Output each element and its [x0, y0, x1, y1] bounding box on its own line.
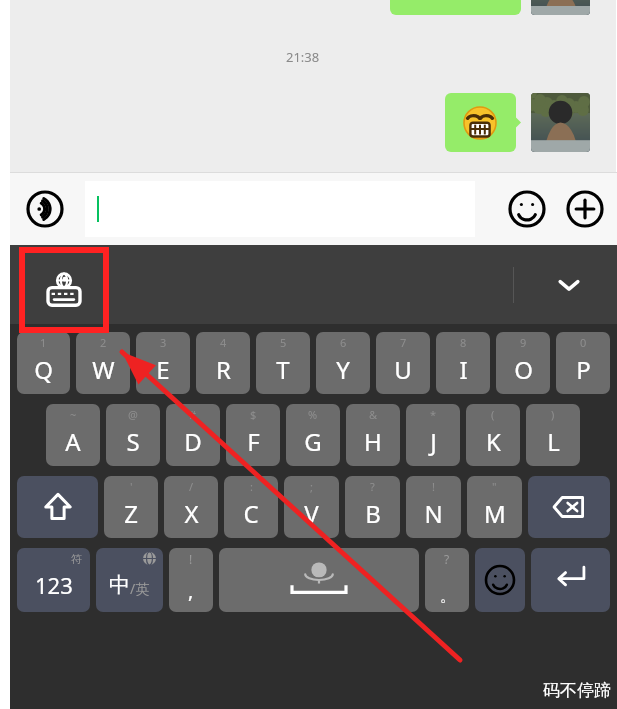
staticText: M — [484, 497, 506, 530]
staticText: B — [365, 497, 381, 530]
staticText: 5 — [280, 335, 287, 350]
staticText: N — [424, 497, 443, 530]
button[interactable]: 7 — [376, 332, 430, 394]
staticText: 1 — [40, 335, 47, 350]
button[interactable]: 1 — [17, 332, 70, 394]
staticText: # — [189, 407, 197, 422]
staticText: Y — [336, 353, 350, 386]
staticText: U — [394, 353, 412, 386]
staticText: W — [92, 353, 115, 386]
button[interactable]: : — [224, 476, 278, 538]
button[interactable]: * — [406, 404, 460, 466]
staticText: @ — [128, 407, 138, 422]
staticText: 123 — [35, 570, 73, 600]
button[interactable]: Backspace — [528, 476, 610, 538]
staticText: ? — [444, 551, 450, 567]
staticText: 9 — [520, 335, 527, 350]
button[interactable]: ; — [284, 476, 339, 538]
staticText: E — [156, 353, 170, 386]
button[interactable]: 9 — [496, 332, 550, 394]
staticText: 0 — [580, 335, 587, 350]
button[interactable] — [85, 181, 475, 237]
button[interactable]: Hide keyboard — [543, 259, 595, 311]
staticText: R — [216, 353, 231, 386]
button[interactable]: 4 — [196, 332, 250, 394]
button[interactable]: ? — [345, 476, 400, 538]
staticText: ; — [310, 479, 313, 494]
button[interactable]: 2 — [76, 332, 130, 394]
staticText: S — [126, 425, 140, 458]
staticText: 8 — [460, 335, 467, 350]
button[interactable]: / — [164, 476, 218, 538]
staticText: X — [184, 497, 199, 530]
button[interactable]: ! — [406, 476, 461, 538]
button[interactable]: 3 — [136, 332, 190, 394]
staticText: , — [188, 577, 194, 604]
staticText: O — [514, 353, 533, 386]
staticText: 符 — [71, 552, 82, 566]
button[interactable]: ) — [526, 404, 580, 466]
button[interactable]: " — [467, 476, 522, 538]
staticText: 中 — [109, 572, 130, 598]
staticText: ( — [491, 407, 495, 422]
button[interactable]: 6 — [316, 332, 370, 394]
button[interactable]: # — [166, 404, 220, 466]
staticText: ! — [432, 479, 435, 494]
button[interactable]: Emoji — [475, 548, 525, 612]
button[interactable]: % — [286, 404, 340, 466]
staticText: T — [276, 353, 290, 386]
staticText: 3 — [160, 335, 167, 350]
staticText: C — [243, 497, 259, 530]
button[interactable]: Shift — [17, 476, 98, 538]
button[interactable]: Comma — [169, 548, 213, 612]
button[interactable]: Enter — [531, 548, 610, 612]
button[interactable]: More — [561, 185, 609, 233]
button[interactable]: ~ — [46, 404, 100, 466]
button[interactable]: Period — [425, 548, 469, 612]
staticText: % — [308, 407, 318, 422]
staticText: ) — [551, 407, 555, 422]
staticText: Z — [124, 497, 138, 530]
button[interactable]: 0 — [556, 332, 610, 394]
staticText: 。 — [440, 587, 455, 606]
staticText: 21:38 — [286, 48, 320, 66]
staticText: & — [369, 407, 378, 422]
button[interactable]: ( — [466, 404, 520, 466]
button[interactable]: Input method — [22, 250, 105, 329]
staticText: 7 — [400, 335, 407, 350]
staticText: D — [184, 425, 202, 458]
button[interactable]: @ — [106, 404, 160, 466]
button[interactable]: Language — [96, 548, 163, 612]
staticText: " — [492, 479, 497, 494]
staticText: : — [250, 479, 253, 494]
staticText: L — [547, 425, 560, 458]
staticText: 6 — [340, 335, 347, 350]
button[interactable]: $ — [226, 404, 280, 466]
staticText: Q — [34, 353, 53, 386]
staticText: 2 — [100, 335, 107, 350]
button[interactable]: 5 — [256, 332, 310, 394]
staticText: 4 — [220, 335, 227, 350]
staticText: ? — [370, 479, 375, 494]
staticText: * — [430, 407, 437, 422]
staticText: K — [486, 425, 501, 458]
staticText: J — [430, 425, 437, 458]
staticText: V — [304, 497, 319, 530]
button[interactable]: ' — [104, 476, 158, 538]
staticText: $ — [250, 407, 257, 422]
button[interactable]: 8 — [436, 332, 490, 394]
staticText: 码不停蹄 — [543, 680, 611, 701]
button[interactable]: Voice input — [20, 184, 70, 234]
button[interactable]: Space — [219, 548, 419, 612]
staticText: ~ — [70, 407, 77, 422]
staticText: G — [304, 425, 322, 458]
button[interactable]: Numbers — [17, 548, 90, 612]
staticText: P — [576, 353, 591, 386]
staticText: ! — [189, 551, 193, 567]
button[interactable]: & — [346, 404, 400, 466]
staticText: /英 — [130, 579, 150, 598]
staticText: I — [459, 353, 468, 386]
staticText: F — [247, 425, 260, 458]
button[interactable]: Emoji — [503, 185, 551, 233]
staticText: H — [364, 425, 382, 458]
